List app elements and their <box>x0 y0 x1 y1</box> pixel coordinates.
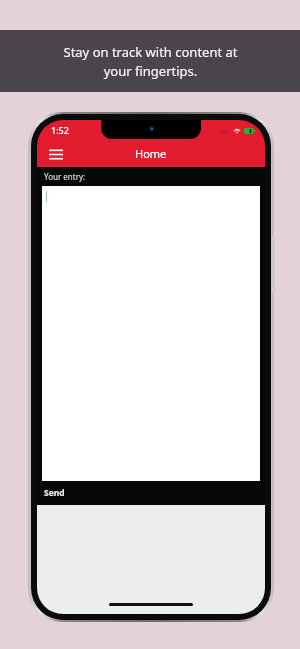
button[interactable]: Send <box>42 486 67 500</box>
button[interactable]: Open navigation menu <box>43 141 69 167</box>
staticText: 1:52 <box>51 124 69 136</box>
staticText: Your entry: <box>44 171 86 182</box>
staticText: Home <box>135 146 167 161</box>
staticText: Stay on track with content at your finge… <box>63 43 238 80</box>
staticText: Send <box>44 487 65 499</box>
